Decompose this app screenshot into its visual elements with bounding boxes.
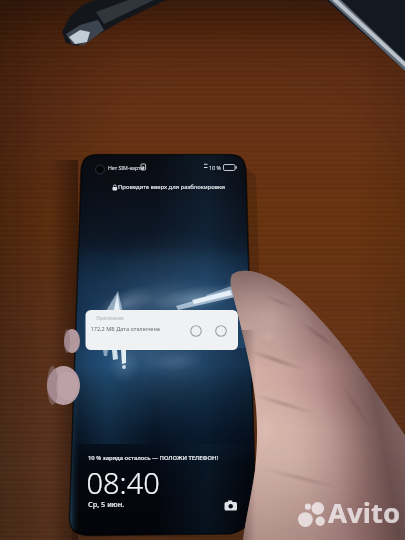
button[interactable]: Photo of a phone held in a hand on a woo… bbox=[0, 0, 405, 540]
